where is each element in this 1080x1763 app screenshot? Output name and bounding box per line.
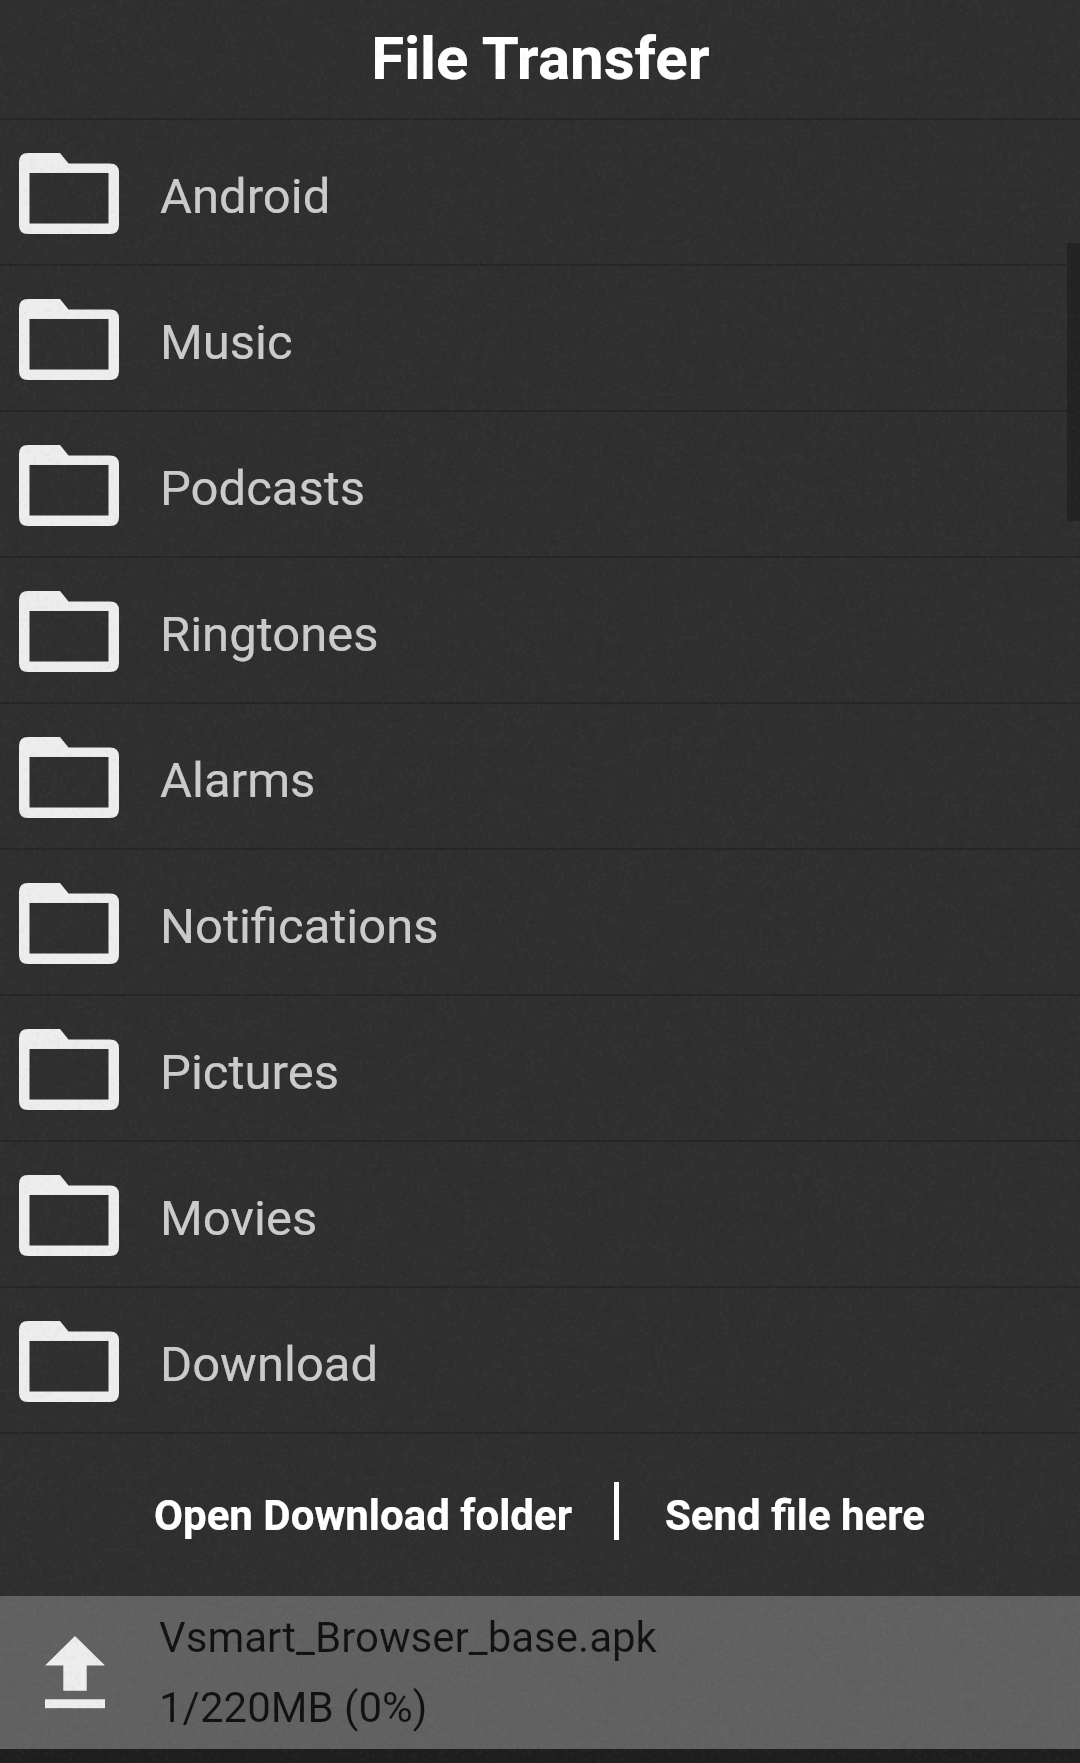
staticText: Music <box>160 314 293 371</box>
button[interactable]: Send file here <box>655 1460 935 1570</box>
staticText: Vsmart_Browser_base.apk <box>159 1613 657 1662</box>
button[interactable]: Pictures <box>0 996 1080 1142</box>
button[interactable]: Alarms <box>0 704 1080 850</box>
staticText: Download <box>160 1336 379 1393</box>
button[interactable]: Uploading <box>0 1596 1080 1749</box>
staticText: Movies <box>160 1190 318 1247</box>
staticText: Android <box>160 168 331 225</box>
staticText: Open Download folder <box>154 1491 572 1540</box>
staticText: Pictures <box>160 1044 339 1101</box>
button[interactable]: Podcasts <box>0 412 1080 558</box>
other: Uploading <box>45 1636 105 1710</box>
button[interactable]: Notifications <box>0 850 1080 996</box>
button[interactable]: Music <box>0 266 1080 412</box>
button[interactable]: Movies <box>0 1142 1080 1288</box>
button[interactable]: Android <box>0 120 1080 266</box>
staticText: Ringtones <box>160 606 379 663</box>
staticText: Alarms <box>160 752 316 809</box>
staticText: 1/220MB (0%) <box>159 1683 428 1732</box>
staticText: Podcasts <box>160 460 366 517</box>
staticText: Notifications <box>160 898 439 955</box>
button[interactable]: Download <box>0 1288 1080 1434</box>
button[interactable]: Ringtones <box>0 558 1080 704</box>
staticText: Send file here <box>665 1491 925 1540</box>
button[interactable]: Open Download folder <box>148 1460 578 1570</box>
staticText: File Transfer <box>371 23 710 93</box>
